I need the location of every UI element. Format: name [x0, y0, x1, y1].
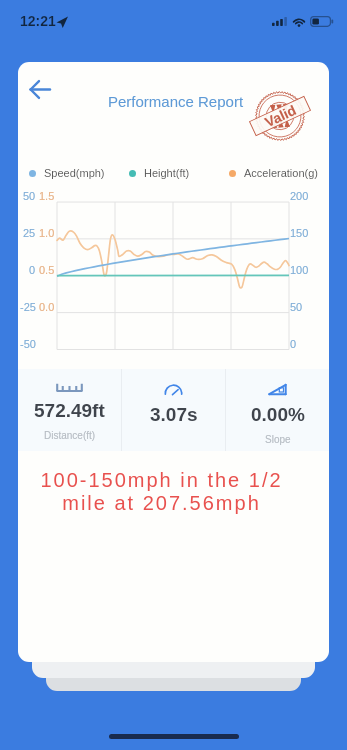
- staticText: 0: [290, 338, 297, 350]
- staticText: Acceleration(g): [244, 167, 318, 179]
- staticText: 1.0: [39, 227, 55, 239]
- staticText: Performance Report: [108, 93, 244, 110]
- button[interactable]: 3.07s: [122, 369, 225, 451]
- staticText: 50: [290, 301, 303, 313]
- staticText: Slope: [265, 434, 291, 445]
- staticText: 0: [29, 264, 36, 276]
- staticText: 0.0: [39, 301, 55, 313]
- staticText: Height(ft): [144, 167, 190, 179]
- staticText: -25: [20, 301, 36, 313]
- button[interactable]: 0.00%: [226, 369, 329, 451]
- staticText: Valid: [262, 102, 299, 130]
- staticText: 0.5: [39, 264, 55, 276]
- staticText: Distance(ft): [44, 430, 96, 441]
- staticText: Speed(mph): [44, 167, 105, 179]
- staticText: 572.49ft: [34, 400, 105, 421]
- staticText: 3.07s: [150, 404, 198, 425]
- staticText: -50: [20, 338, 36, 350]
- staticText: 0.00%: [251, 404, 305, 425]
- staticText: 50: [23, 190, 36, 202]
- staticText: 12:21: [20, 13, 56, 29]
- staticText: 100-150mph in the 1/2 mile at 207.56mph: [18, 469, 317, 515]
- button[interactable]: 572.49ft: [18, 369, 121, 451]
- staticText: 25: [23, 227, 36, 239]
- staticText: 200: [290, 190, 309, 202]
- staticText: 100: [290, 264, 309, 276]
- staticText: 1.5: [39, 190, 55, 202]
- staticText: 150: [290, 227, 309, 239]
- button[interactable]: Back: [20, 69, 60, 109]
